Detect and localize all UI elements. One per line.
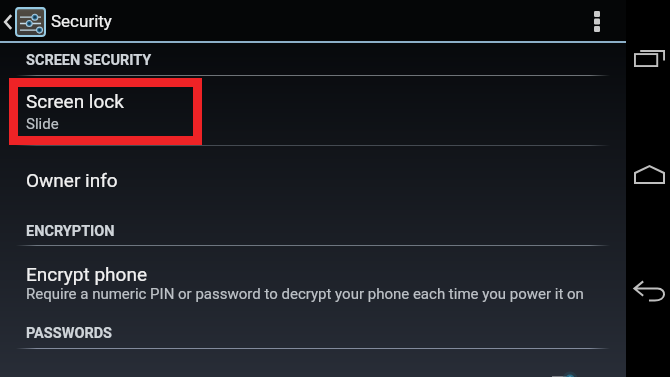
button[interactable]: Screen lock xyxy=(0,78,626,145)
button[interactable]: Recents xyxy=(626,36,670,80)
staticText: Owner info xyxy=(26,169,118,191)
button[interactable]: Encrypt phone xyxy=(0,248,626,304)
staticText: Encrypt phone xyxy=(26,263,147,285)
staticText: Screen lock xyxy=(26,90,124,112)
button[interactable]: More options xyxy=(577,0,621,43)
staticText: SCREEN SECURITY xyxy=(26,52,152,69)
button[interactable]: Navigate up xyxy=(0,0,48,43)
staticText: Require a numeric PIN or password to dec… xyxy=(26,285,584,303)
button[interactable]: Back xyxy=(626,269,670,313)
button[interactable]: Owner info xyxy=(0,145,626,207)
staticText: Security xyxy=(51,11,112,31)
staticText: Slide xyxy=(26,115,59,133)
staticText: ENCRYPTION xyxy=(26,223,115,240)
staticText: PASSWORDS xyxy=(26,325,112,342)
button[interactable]: Toggle xyxy=(540,366,586,377)
button[interactable]: Home xyxy=(626,152,670,196)
